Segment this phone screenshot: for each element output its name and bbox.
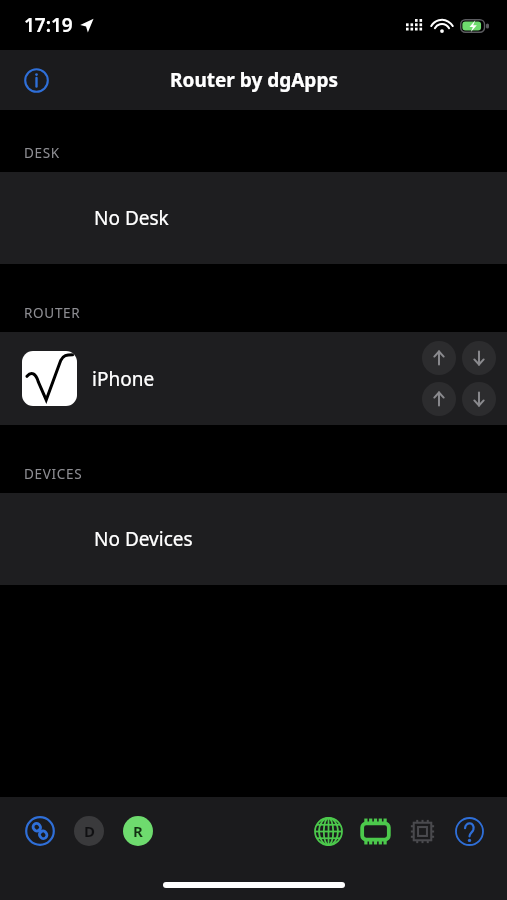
button[interactable]: Router xyxy=(356,812,394,850)
button[interactable]: Help xyxy=(450,812,488,850)
staticText: R xyxy=(133,821,143,841)
staticText: ROUTER xyxy=(24,304,81,322)
button[interactable]: Internet xyxy=(309,812,347,850)
button[interactable]: iPhone xyxy=(0,332,507,425)
button[interactable]: Desk disconnected xyxy=(70,812,108,850)
staticText: DESK xyxy=(24,144,60,162)
button[interactable]: Info xyxy=(14,58,58,102)
staticText: No Devices xyxy=(94,526,193,552)
staticText: Router by dgApps xyxy=(170,67,338,93)
button[interactable]: No Devices xyxy=(0,493,507,585)
button[interactable]: Decrease download xyxy=(462,382,496,416)
staticText: No Desk xyxy=(94,205,169,231)
button[interactable]: Connect xyxy=(21,812,59,850)
staticText: D xyxy=(84,821,95,841)
button[interactable]: Decrease upload xyxy=(462,341,496,375)
staticText: iPhone xyxy=(92,366,155,392)
staticText: DEVICES xyxy=(24,465,83,483)
button[interactable]: Increase upload xyxy=(422,341,456,375)
button[interactable]: Increase download xyxy=(422,382,456,416)
staticText: 17:19 xyxy=(24,12,73,38)
button[interactable]: No Desk xyxy=(0,172,507,264)
button[interactable]: Router connected xyxy=(119,812,157,850)
button[interactable]: Device xyxy=(403,812,441,850)
